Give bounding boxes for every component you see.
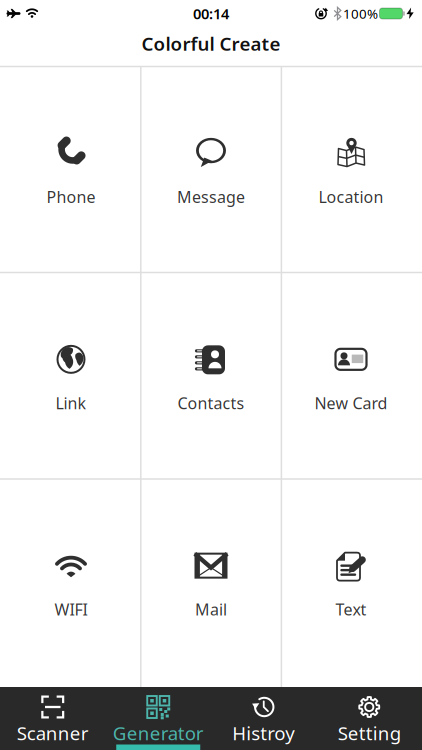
- button[interactable]: Location: [281, 67, 421, 273]
- button[interactable]: Link: [1, 273, 141, 480]
- button[interactable]: Scanner: [0, 687, 105, 750]
- staticText: Colorful Create: [141, 31, 280, 56]
- staticText: Setting: [338, 720, 401, 745]
- button[interactable]: Histroy: [211, 687, 316, 750]
- button[interactable]: Phone: [1, 67, 141, 273]
- staticText: Generator: [113, 720, 204, 745]
- button[interactable]: Setting: [316, 687, 422, 750]
- button[interactable]: New Card: [281, 273, 421, 480]
- staticText: Location: [318, 186, 383, 207]
- staticText: Text: [335, 599, 366, 620]
- staticText: Histroy: [232, 720, 295, 745]
- staticText: 100%: [343, 5, 378, 22]
- staticText: Contacts: [177, 392, 244, 413]
- button[interactable]: Mail: [141, 480, 281, 686]
- staticText: Mail: [195, 599, 227, 620]
- staticText: Link: [55, 392, 86, 413]
- staticText: 00:14: [193, 4, 229, 23]
- staticText: Scanner: [17, 720, 89, 745]
- button[interactable]: Message: [141, 67, 281, 273]
- staticText: New Card: [314, 392, 387, 413]
- staticText: WIFI: [54, 599, 87, 620]
- button[interactable]: Generator: [105, 687, 211, 750]
- button[interactable]: Text: [281, 480, 421, 686]
- button[interactable]: Contacts: [141, 273, 281, 480]
- staticText: Phone: [46, 186, 95, 207]
- staticText: Message: [177, 186, 245, 207]
- button[interactable]: WIFI: [1, 480, 141, 686]
